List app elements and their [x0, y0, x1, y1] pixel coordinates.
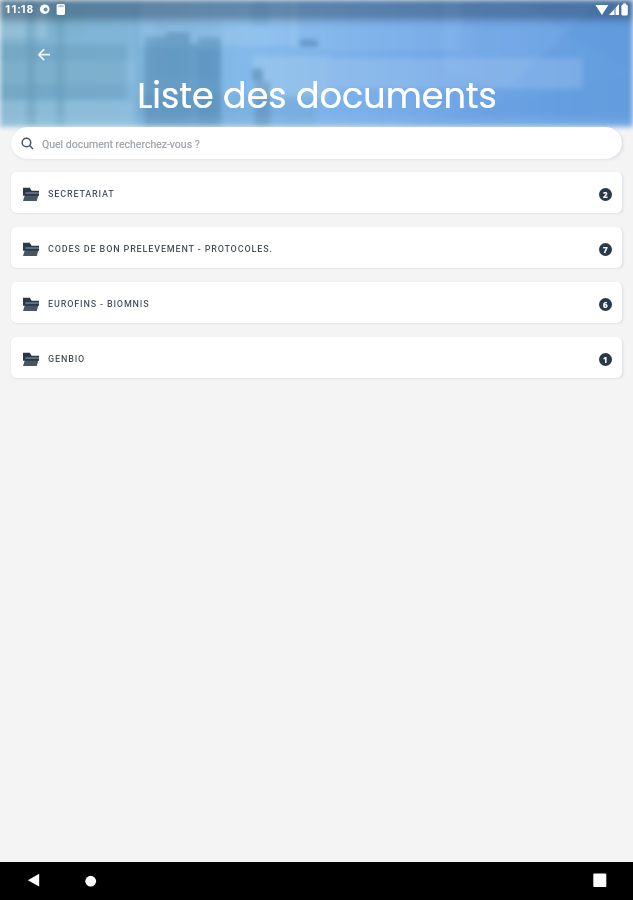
staticText: 2	[603, 189, 608, 200]
staticText: 6	[603, 299, 608, 310]
staticText: 11:18	[5, 3, 33, 16]
staticText: Quel document recherchez-vous ?	[42, 138, 200, 150]
staticText: SECRETARIAT	[48, 189, 115, 200]
button[interactable]: Back	[31, 42, 57, 68]
button[interactable]: EUROFINS - BIOMNIS	[11, 282, 622, 323]
button[interactable]: CODES DE BON PRELEVEMENT - PROTOCOLES.	[11, 227, 622, 268]
staticText: 7	[603, 244, 608, 255]
staticText: 1	[603, 354, 608, 365]
button[interactable]: Quel document recherchez-vous ?	[11, 127, 622, 159]
staticText: Liste des documents	[137, 71, 497, 120]
staticText: EUROFINS - BIOMNIS	[48, 299, 150, 310]
staticText: GENBIO	[48, 354, 86, 365]
button[interactable]: SECRETARIAT	[11, 172, 622, 213]
button[interactable]: GENBIO	[11, 337, 622, 378]
staticText: CODES DE BON PRELEVEMENT - PROTOCOLES.	[48, 244, 273, 255]
